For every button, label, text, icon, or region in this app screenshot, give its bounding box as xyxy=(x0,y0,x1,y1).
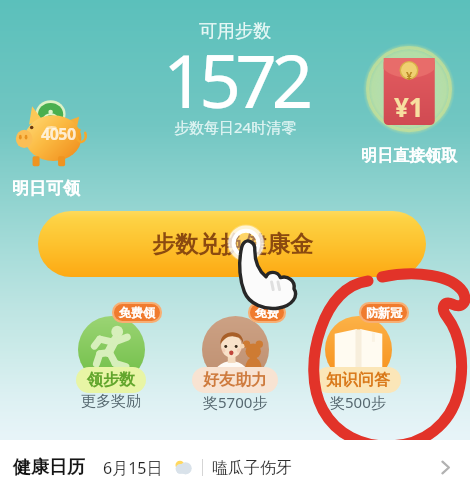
staticText: 奖5700步 xyxy=(203,392,268,412)
staticText: 明日可领 xyxy=(12,178,80,199)
staticText: 4050 xyxy=(41,123,76,145)
staticText: 更多奖励 xyxy=(81,392,141,411)
staticText: ¥1 xyxy=(394,89,424,124)
staticText: 1572 xyxy=(163,30,308,129)
button[interactable]: 免费 xyxy=(174,298,296,416)
staticText: 奖500步 xyxy=(330,392,386,412)
staticText: 领步数 xyxy=(87,370,135,390)
button[interactable]: 4050 xyxy=(11,94,99,170)
staticText: ¥ xyxy=(406,68,413,83)
staticText: 免费领 xyxy=(119,305,155,320)
button[interactable]: 免费领 xyxy=(50,298,172,416)
staticText: 嗑瓜子伤牙 xyxy=(212,458,292,478)
button[interactable]: ¥ xyxy=(363,44,455,140)
staticText: 知识问答 xyxy=(326,370,390,390)
staticText: 可用步数 xyxy=(199,20,271,43)
staticText: 6月15日 xyxy=(103,457,163,479)
other: More xyxy=(437,459,454,476)
staticText: 好友助力 xyxy=(203,370,267,390)
other: Tap here xyxy=(224,234,304,314)
staticText: 免费 xyxy=(255,305,279,320)
staticText: 防新冠 xyxy=(366,305,402,320)
button[interactable]: 步数兑换健康金 xyxy=(38,211,426,277)
staticText: 步数每日24时清零 xyxy=(174,117,297,137)
staticText: 健康日历 xyxy=(13,456,85,479)
button[interactable]: 防新冠 xyxy=(297,298,419,416)
button[interactable]: 健康日历 xyxy=(13,440,454,495)
staticText: 步数兑换健康金 xyxy=(152,230,313,259)
staticText: 明日直接领取 xyxy=(361,146,457,166)
